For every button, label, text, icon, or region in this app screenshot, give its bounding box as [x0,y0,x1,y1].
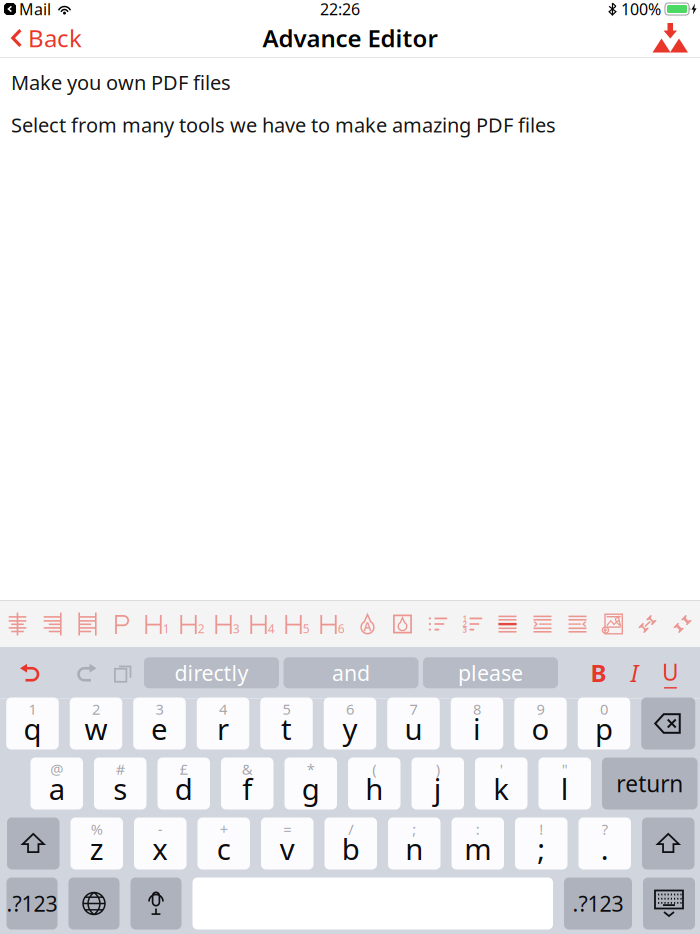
button[interactable]: Back [0,19,94,57]
staticText: .?123 [572,889,623,918]
staticText: = [283,819,291,839]
button[interactable]: 6 [324,697,376,749]
staticText: ; [537,829,545,868]
button[interactable]: : [451,817,504,869]
staticText: b [342,829,360,868]
button[interactable]: ( [348,757,400,809]
button[interactable]: Undo [0,647,65,698]
button[interactable]: .?123 [564,877,632,929]
button[interactable]: Shift [642,817,694,869]
button[interactable]: Heading 4 [245,601,280,647]
button[interactable]: Bulleted list [420,601,455,647]
staticText: ) [436,759,440,779]
button[interactable]: " [538,757,591,809]
staticText: f [242,769,252,808]
button[interactable]: & [221,757,273,809]
button[interactable]: Outdent [560,601,595,647]
button[interactable]: Heading 2 [175,601,210,647]
button[interactable]: I [616,647,652,698]
button[interactable]: Highlight colour [385,601,420,647]
button[interactable]: Hide keyboard [643,877,695,929]
button[interactable]: B [580,647,616,698]
staticText: % [91,819,103,839]
button[interactable]: Export PDF [642,19,700,57]
staticText: @ [50,759,63,779]
button[interactable]: Shift [7,817,59,869]
staticText: # [116,759,125,779]
button[interactable]: Remove link [665,601,700,647]
button[interactable]: Block quote [490,601,525,647]
button[interactable]: * [284,757,337,809]
button[interactable]: ; [388,817,440,869]
button[interactable]: + [197,817,250,869]
button[interactable]: 2 [70,697,122,749]
button[interactable]: Justify [70,601,105,647]
button[interactable]: £ [157,757,210,809]
staticText: m [464,829,491,868]
staticText: 6 [346,699,354,719]
button[interactable]: Heading 1 [140,601,175,647]
staticText: s [113,769,127,808]
staticText: g [302,769,320,808]
button[interactable]: Align right [35,601,70,647]
staticText: 5 [303,620,310,636]
staticText: 3 [462,624,467,635]
button[interactable]: ' [475,757,527,809]
button[interactable]: 7 [387,697,440,749]
staticText: ? [602,819,608,839]
staticText: " [562,759,568,779]
button[interactable]: space [192,877,553,929]
button[interactable]: 1 [6,697,59,749]
staticText: h [365,769,383,808]
button[interactable]: # [94,757,146,809]
button[interactable]: U [652,647,688,698]
button[interactable]: - [134,817,186,869]
button[interactable]: % [70,817,123,869]
button[interactable]: Numbered list [455,601,490,647]
staticText: v [280,829,295,868]
button[interactable]: Heading 6 [315,601,350,647]
button[interactable]: Align center [0,601,35,647]
staticText: d [175,769,193,808]
staticText: B [590,657,606,689]
button[interactable]: 0 [578,697,630,749]
button[interactable]: ) [411,757,464,809]
button[interactable]: Paste [103,647,144,698]
staticText: & [242,759,253,779]
button[interactable]: Dictation [130,877,181,929]
staticText: 6 [338,620,345,636]
button[interactable]: Redo [65,647,103,698]
button[interactable]: Heading 5 [280,601,315,647]
button[interactable]: Indent [525,601,560,647]
button[interactable]: Paragraph [105,601,140,647]
button[interactable]: / [324,817,377,869]
button[interactable]: = [261,817,313,869]
button[interactable]: 9 [514,697,567,749]
staticText: x [152,829,168,868]
button[interactable]: Delete [641,697,695,749]
staticText: ! [539,819,543,839]
button[interactable]: Insert link [630,601,665,647]
button[interactable]: directly [144,657,279,688]
button[interactable]: please [423,657,558,688]
button[interactable]: 4 [197,697,249,749]
button[interactable]: Next keyboard [68,877,119,929]
button[interactable]: .?123 [6,877,57,929]
staticText: j [434,769,442,808]
button[interactable]: Heading 3 [210,601,245,647]
button[interactable]: Insert image [595,601,630,647]
staticText: y [342,709,357,748]
staticText: ' [500,759,503,779]
staticText: 8 [473,699,481,719]
staticText: and [332,659,370,687]
button[interactable]: ? [578,817,631,869]
button[interactable]: and [283,657,418,688]
button[interactable]: 5 [260,697,313,749]
staticText: please [458,659,523,687]
button[interactable]: 8 [451,697,503,749]
button[interactable]: Text colour [350,601,385,647]
button[interactable]: @ [30,757,83,809]
button[interactable]: ! [515,817,567,869]
button[interactable]: 3 [133,697,186,749]
button[interactable]: return [602,757,697,809]
